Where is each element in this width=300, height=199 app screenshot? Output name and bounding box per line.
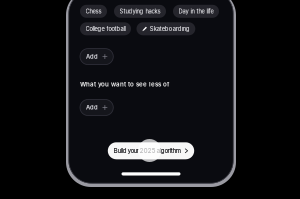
button[interactable]: Add xyxy=(80,49,113,65)
button[interactable]: Chess xyxy=(80,5,107,18)
button[interactable]: College football xyxy=(80,22,131,35)
button[interactable]: Build your 2025 algorithm xyxy=(108,142,194,159)
staticText: Skateboarding xyxy=(150,25,190,32)
staticText: Add xyxy=(86,104,98,111)
button[interactable]: Add xyxy=(80,99,113,115)
staticText: What you want to see less of xyxy=(80,81,169,88)
button[interactable]: Skateboarding xyxy=(136,22,195,35)
staticText: Day in the life xyxy=(178,8,213,15)
staticText: Add xyxy=(86,53,98,60)
button[interactable]: Studying hacks xyxy=(114,5,166,18)
staticText: Studying hacks xyxy=(119,8,160,15)
staticText: Chess xyxy=(85,8,101,15)
button[interactable]: Day in the life xyxy=(173,5,219,18)
staticText: College football xyxy=(85,25,125,32)
staticText: Build your 2025 algorithm xyxy=(114,147,181,154)
